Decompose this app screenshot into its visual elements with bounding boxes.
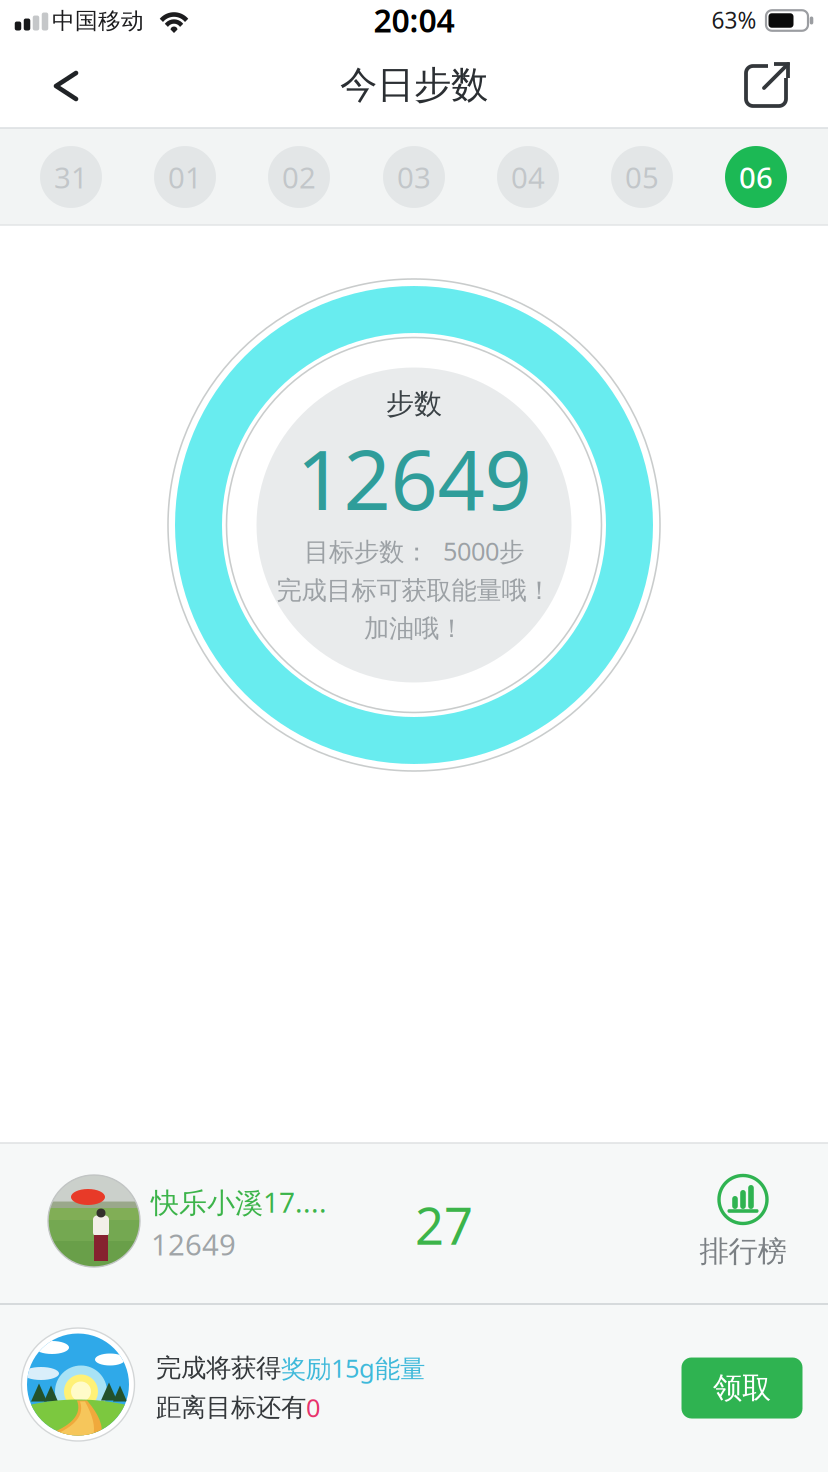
staticText: 31 xyxy=(54,157,88,196)
button[interactable]: 排行榜 xyxy=(699,1174,786,1269)
staticText: 05 xyxy=(625,157,659,196)
button[interactable] xyxy=(742,58,794,110)
button[interactable]: 02 xyxy=(268,146,330,208)
staticText: 06 xyxy=(739,157,773,196)
button[interactable]: 03 xyxy=(383,146,445,208)
staticText: 完成将获得 xyxy=(156,1352,281,1383)
staticText: 快乐小溪17.... xyxy=(151,1183,327,1221)
staticText: 12649 xyxy=(151,1224,236,1263)
staticText: 02 xyxy=(282,157,316,196)
staticText: 12649 xyxy=(296,423,531,533)
staticText: 距离目标还有 xyxy=(156,1392,306,1423)
staticText: 03 xyxy=(397,157,431,196)
staticText: 排行榜 xyxy=(699,1233,786,1269)
staticText: 奖励15g能量 xyxy=(281,1351,425,1385)
staticText: 领取 xyxy=(713,1370,771,1406)
staticText: 04 xyxy=(511,157,545,196)
staticText: 27 xyxy=(415,1191,473,1259)
staticText: 63% xyxy=(711,5,756,35)
staticText: 0 xyxy=(306,1391,320,1424)
button[interactable]: 领取 xyxy=(681,1357,802,1418)
button[interactable]: 05 xyxy=(611,146,673,208)
button[interactable]: 06 xyxy=(725,146,787,208)
staticText: 中国移动 xyxy=(52,7,144,35)
staticText: 完成目标可获取能量哦！ xyxy=(276,575,551,606)
staticText: 步数 xyxy=(386,387,442,421)
staticText: 今日步数 xyxy=(340,62,488,108)
staticText: 01 xyxy=(168,157,202,196)
button[interactable]: 04 xyxy=(497,146,559,208)
button[interactable] xyxy=(36,56,96,116)
button[interactable]: 01 xyxy=(154,146,216,208)
staticText: 目标步数： 5000步 xyxy=(304,534,524,568)
button[interactable]: 31 xyxy=(40,146,102,208)
staticText: 20:04 xyxy=(373,0,454,41)
staticText: 加油哦！ xyxy=(364,613,464,644)
